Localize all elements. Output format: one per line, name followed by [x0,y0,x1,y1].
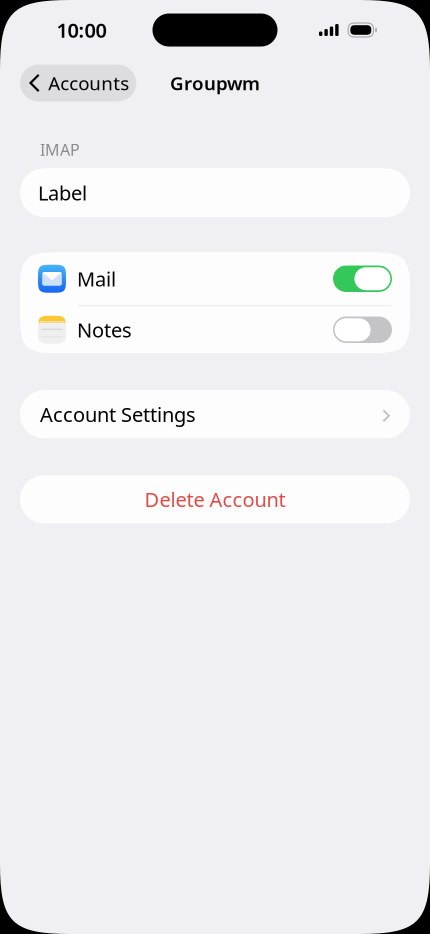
staticText: Groupwm [170,71,260,95]
button[interactable]: Account Settings [0,390,430,438]
staticText: Label [38,179,87,206]
staticText: Notes [77,316,132,343]
staticText: 10:00 [56,17,106,43]
button[interactable]: Accounts [20,65,136,101]
staticText: Mail [77,265,116,292]
staticText: Delete Account [144,486,285,513]
staticText: IMAP [40,139,80,160]
staticText: Account Settings [40,401,196,428]
staticText: Accounts [48,71,129,95]
button[interactable]: Delete Account [0,475,430,523]
